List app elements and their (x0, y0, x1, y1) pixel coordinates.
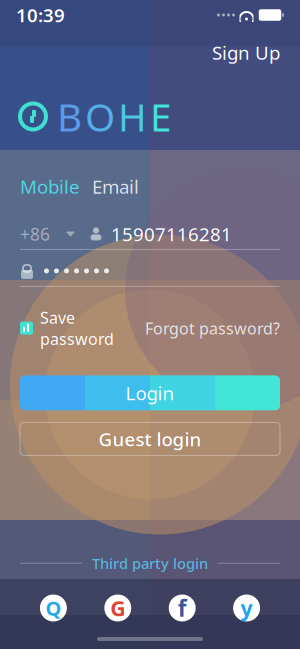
staticText: Guest login (98, 426, 201, 451)
staticText: B (57, 91, 82, 142)
staticText: G (110, 594, 125, 622)
button[interactable]: Sign in with QQ (36, 591, 70, 625)
button[interactable]: Sign Up (206, 36, 286, 69)
staticText: O (85, 91, 115, 142)
staticText: Sign Up (212, 40, 280, 65)
button[interactable]: Email (92, 174, 139, 199)
staticText: f (178, 593, 187, 623)
button[interactable]: Sign in with Facebook (165, 591, 199, 625)
button[interactable]: Mobile (20, 174, 80, 199)
button[interactable]: Forgot password? (145, 314, 280, 343)
staticText: Q (45, 595, 61, 621)
staticText: Save password (40, 307, 114, 349)
staticText: 15907116281 (111, 221, 232, 246)
staticText: y (241, 594, 253, 622)
staticText: H (118, 91, 147, 142)
staticText: Third party login (92, 553, 208, 573)
staticText: Forgot password? (145, 318, 280, 339)
button[interactable]: Sign in with Twitter (230, 591, 264, 625)
button[interactable]: Guest login (20, 422, 280, 455)
button[interactable]: Sign in with Google (101, 591, 135, 625)
staticText: E (150, 91, 171, 142)
staticText: Mobile (20, 174, 80, 199)
button[interactable]: Login (20, 375, 280, 410)
staticText: Login (125, 380, 174, 405)
staticText: Email (92, 174, 139, 199)
button[interactable]: Save password (20, 303, 114, 353)
staticText: +86 (20, 222, 50, 245)
staticText: 10:39 (16, 3, 65, 27)
